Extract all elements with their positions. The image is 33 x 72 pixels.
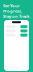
staticText: Stay on Track [3,14,29,19]
staticText: See Your Progress, [3,3,22,14]
